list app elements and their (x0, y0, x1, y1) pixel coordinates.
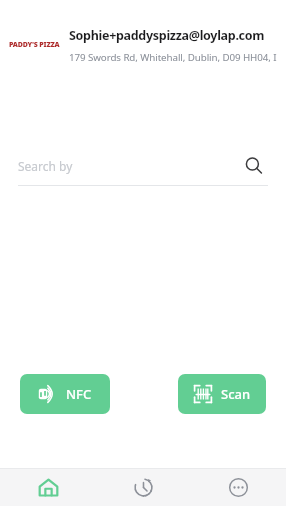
button[interactable]: Search by (18, 150, 268, 182)
staticText: NFC (66, 385, 92, 403)
button[interactable]: Scan (178, 374, 266, 414)
button[interactable]: Search (240, 152, 268, 180)
button[interactable]: Home (0, 469, 96, 506)
staticText: Sophie+paddyspizza@loylap.com (69, 27, 265, 44)
button[interactable]: History (96, 469, 191, 506)
staticText: Search by (18, 158, 240, 174)
button[interactable]: More (191, 469, 286, 506)
staticText: Scan (221, 385, 251, 403)
staticText: PADDY'S PIZZA (9, 40, 60, 50)
staticText: 179 Swords Rd, Whitehall, Dublin, D09 HH… (69, 51, 277, 64)
button[interactable]: NFC (20, 374, 110, 414)
